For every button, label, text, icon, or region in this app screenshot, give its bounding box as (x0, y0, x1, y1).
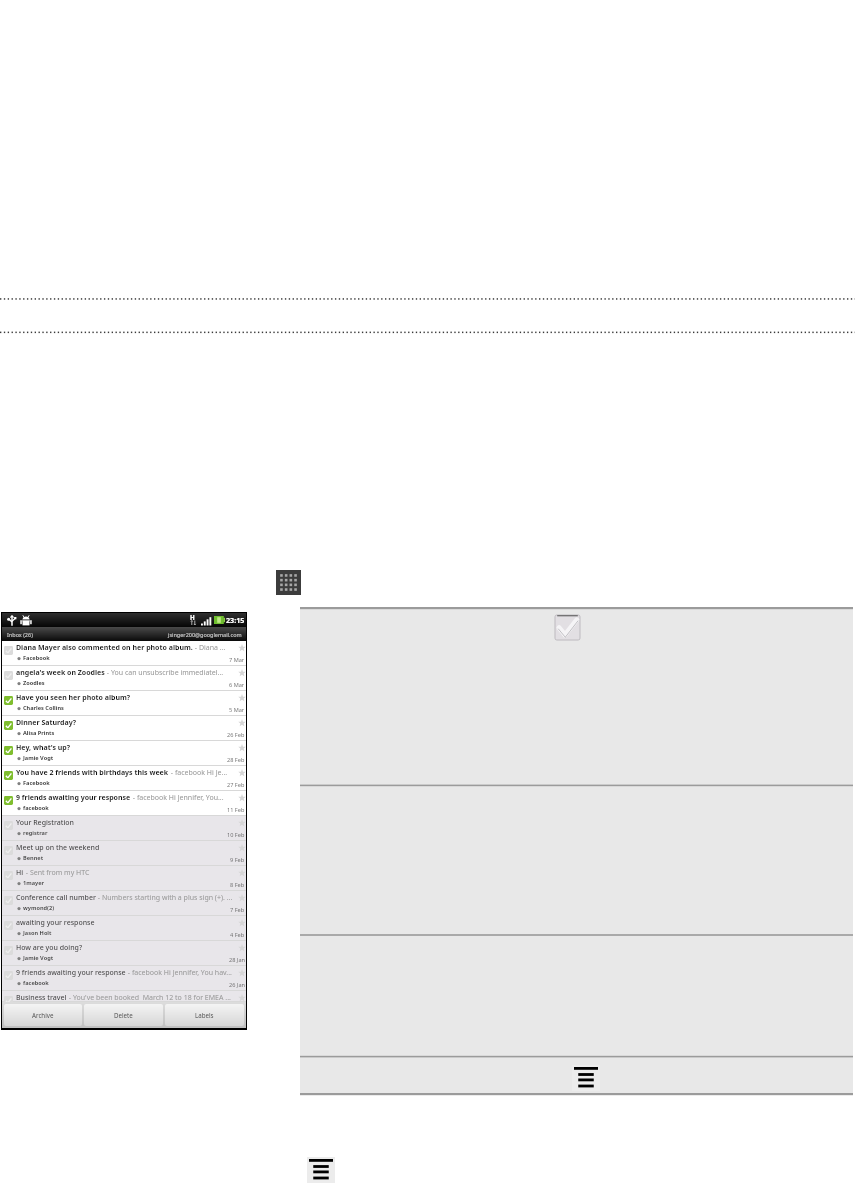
button[interactable]: 9 friends awaiting your response (2, 966, 246, 991)
button[interactable]: Delete (84, 1004, 163, 1026)
staticText: 9 friends awaiting your response (16, 793, 131, 803)
staticText: 10 Feb (227, 831, 245, 839)
staticText: Jason Holt (23, 929, 52, 937)
staticText: Diana Mayer also commented on her photo … (16, 643, 193, 653)
button[interactable]: Menu (572, 1065, 600, 1091)
staticText: Dinner Saturday? (16, 718, 77, 728)
staticText: 28 Feb (227, 756, 245, 764)
staticText: Business travel (16, 993, 67, 1002)
staticText: Charles Collins (23, 704, 64, 712)
staticText: Have you seen her photo album? (16, 693, 131, 703)
button[interactable]: 9 friends awaiting your response (2, 791, 246, 816)
staticText: Jamie Vogt (23, 754, 54, 762)
button[interactable]: All apps (276, 570, 301, 595)
staticText: 7 Mar (229, 656, 245, 664)
button[interactable]: Menu (307, 1157, 335, 1183)
button[interactable]: Checkbox (554, 614, 581, 641)
button[interactable]: Business travel (2, 991, 246, 1002)
staticText: registrar (23, 829, 48, 837)
button[interactable]: How are you doing? (2, 941, 246, 966)
staticText: You have 2 friends with birthdays this w… (16, 768, 169, 778)
button[interactable]: Meet up on the weekend (2, 841, 246, 866)
staticText: Labels (195, 1011, 214, 1019)
button[interactable]: Hey, what's up? (2, 741, 246, 766)
button[interactable]: angela's week on Zoodles (2, 666, 246, 691)
staticText: - You've been booked March 12 to 18 for … (67, 993, 231, 1002)
button[interactable]: Conference call number (2, 891, 246, 916)
staticText: 4 Feb (230, 931, 245, 939)
staticText: 11 Feb (227, 806, 245, 814)
staticText: Bennet (23, 854, 44, 862)
staticText: Hey, what's up? (16, 743, 71, 753)
staticText: 9 friends awaiting your response (16, 968, 126, 978)
staticText: Jamie Vogt (23, 954, 54, 962)
button[interactable]: Have you seen her photo album? (2, 691, 246, 716)
staticText: - Diana ... (193, 643, 226, 653)
staticText: awaiting your response (16, 918, 95, 928)
staticText: - Sent from my HTC (24, 868, 90, 878)
staticText: Your Registration (16, 818, 75, 828)
staticText: Hi (16, 868, 24, 878)
staticText: Conference call number (16, 893, 96, 903)
staticText: 7 Feb (230, 906, 245, 914)
staticText: Delete (114, 1011, 133, 1019)
button[interactable]: awaiting your response (2, 916, 246, 941)
staticText: - facebook Hi Je... (169, 768, 228, 778)
button[interactable]: You have 2 friends with birthdays this w… (2, 766, 246, 791)
button[interactable]: Labels (165, 1004, 244, 1026)
staticText: Alisa Prints (23, 729, 55, 737)
staticText: 8 Feb (230, 881, 245, 889)
button[interactable]: Dinner Saturday? (2, 716, 246, 741)
staticText: 23:15 (226, 615, 245, 625)
staticText: facebook (23, 804, 49, 812)
staticText: 26 Jan (229, 981, 245, 989)
staticText: Archive (32, 1011, 54, 1019)
button[interactable]: Your Registration (2, 816, 246, 841)
staticText: 1mayer (23, 879, 45, 887)
staticText: 9 Feb (230, 856, 245, 864)
staticText: 6 Mar (229, 681, 245, 689)
staticText: Facebook (23, 779, 50, 787)
staticText: 26 Feb (227, 731, 245, 739)
staticText: angela's week on Zoodles (16, 668, 105, 678)
staticText: 5 Mar (229, 706, 245, 714)
staticText: - facebook Hi Jennifer, You hav... (126, 968, 232, 978)
staticText: jsinger200@googlemail.com (168, 631, 242, 638)
staticText: Inbox (26) (7, 631, 33, 638)
button[interactable]: Archive (4, 1004, 82, 1026)
staticText: - You can unsubscribe immediatel... (105, 668, 224, 678)
staticText: wymond(2) (23, 904, 55, 912)
staticText: How are you doing? (16, 943, 83, 953)
staticText: Zoodles (23, 679, 45, 687)
staticText: - Numbers starting with a plus sign (+).… (96, 893, 233, 903)
staticText: 27 Feb (227, 781, 245, 789)
staticText: Facebook (23, 654, 50, 662)
staticText: 28 Jan (229, 956, 245, 964)
button[interactable]: Diana Mayer also commented on her photo … (2, 641, 246, 666)
button[interactable]: Hi (2, 866, 246, 891)
staticText: H (190, 613, 195, 621)
staticText: Meet up on the weekend (16, 843, 100, 853)
staticText: facebook (23, 979, 49, 987)
staticText: - facebook Hi Jennifer, You... (131, 793, 224, 803)
